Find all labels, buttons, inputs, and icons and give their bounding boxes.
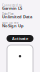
staticText: Unlimited Data <box>2 14 32 19</box>
staticText: Sign Up Fee <box>2 21 19 25</box>
staticText: Garmin LS <box>2 6 22 11</box>
staticText: Activate <box>12 36 28 41</box>
staticText: No Sign Up <box>2 23 24 28</box>
staticText: Data Plan <box>2 12 14 16</box>
button[interactable]: Activate <box>6 35 33 42</box>
staticText: Connected to <box>2 4 22 7</box>
